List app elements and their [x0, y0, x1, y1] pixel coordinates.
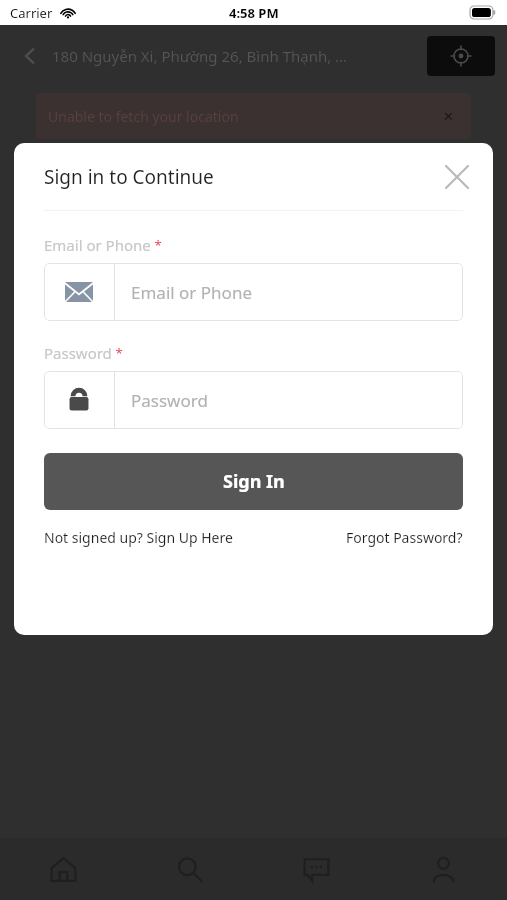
button[interactable]: Back [12, 38, 48, 74]
staticText: * [151, 236, 162, 254]
staticText: Sign In [223, 469, 285, 494]
button[interactable]: Sign In [44, 453, 463, 510]
staticText: Sign in to Continue [44, 164, 214, 190]
staticText: Not signed up? Sign Up Here [44, 528, 233, 547]
staticText: Password [44, 343, 112, 363]
staticText: Email or Phone [131, 281, 252, 304]
button[interactable]: Email or Phone [44, 263, 463, 321]
button[interactable]: Use current location [427, 36, 495, 76]
button[interactable]: Forgot Password? [346, 528, 463, 547]
button[interactable]: Password [44, 371, 463, 429]
staticText: 180 Nguyễn Xi, Phường 26, Bình Thạnh, … [52, 46, 427, 66]
button[interactable]: Not signed up? Sign Up Here [44, 528, 322, 547]
staticText: Unable to fetch your location [48, 107, 239, 126]
staticText: Carrier [10, 4, 53, 22]
staticText: Email or Phone [44, 235, 151, 255]
staticText: Password [131, 389, 208, 412]
button[interactable]: Dismiss [435, 103, 461, 129]
staticText: 4:58 PM [229, 4, 279, 22]
staticText: * [112, 344, 123, 362]
button[interactable]: Close [439, 159, 475, 195]
staticText: Forgot Password? [346, 528, 463, 547]
staticText: ✕ [443, 109, 454, 124]
